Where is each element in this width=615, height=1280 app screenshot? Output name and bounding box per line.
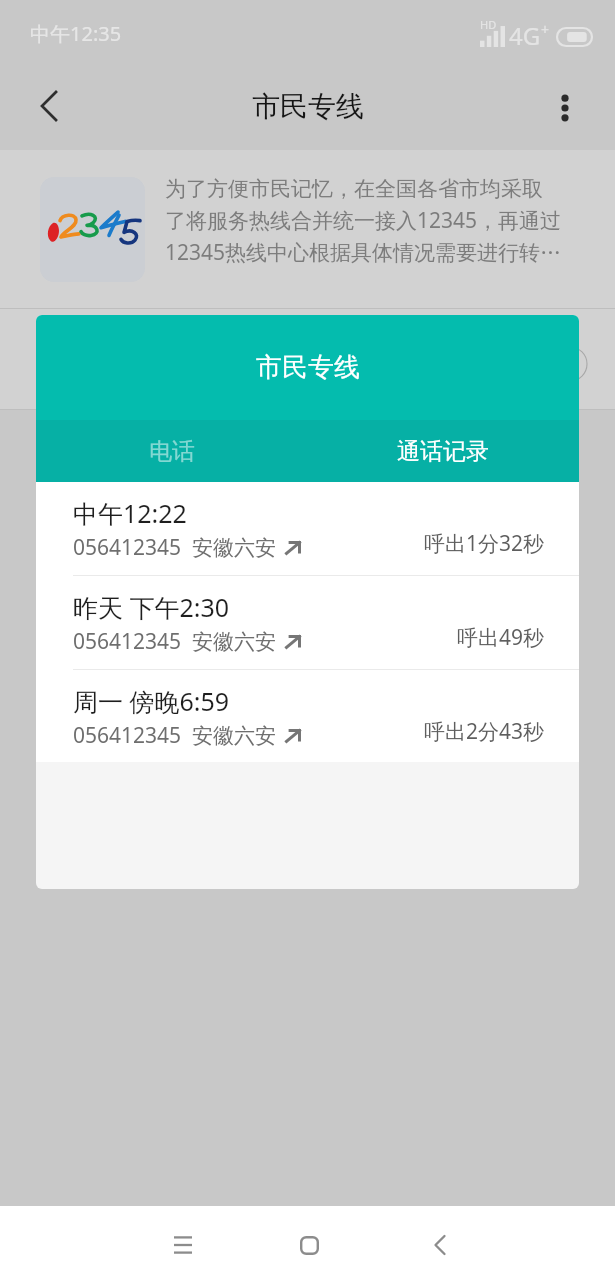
button[interactable]: Home bbox=[277, 1213, 341, 1277]
button[interactable]: 周一 傍晚6:59 bbox=[36, 670, 579, 762]
staticText: 电话 bbox=[149, 437, 195, 466]
staticText: 市民专线 bbox=[256, 351, 360, 384]
staticText: 昨天 下午2:30 bbox=[73, 590, 230, 624]
button[interactable]: Back bbox=[406, 1213, 470, 1277]
staticText: 为了方便市民记忆，在全国各省市均采取了将服务热线合并统一接入12345，再通过1… bbox=[165, 176, 563, 267]
staticText: 中午12:35 bbox=[30, 20, 122, 47]
button[interactable]: 电话 bbox=[36, 420, 307, 482]
staticText: 056412345 安徽六安 bbox=[73, 533, 277, 562]
button[interactable]: Back bbox=[24, 82, 72, 130]
staticText: 周一 傍晚6:59 bbox=[73, 684, 230, 718]
button[interactable]: 昨天 下午2:30 bbox=[36, 576, 579, 669]
button[interactable]: 中午12:22 bbox=[36, 482, 579, 575]
button[interactable]: Recents bbox=[151, 1213, 215, 1277]
staticText: 呼出49秒 bbox=[457, 623, 545, 652]
staticText: 通话记录 bbox=[397, 437, 489, 466]
staticText: 呼出1分32秒 bbox=[424, 529, 545, 558]
button[interactable]: More options bbox=[543, 84, 587, 128]
staticText: 4G bbox=[509, 19, 541, 52]
staticText: HD bbox=[480, 17, 497, 32]
staticText: 中午12:22 bbox=[73, 496, 187, 530]
staticText: + bbox=[541, 20, 550, 39]
staticText: 市民专线 bbox=[252, 89, 364, 124]
staticText: 056412345 安徽六安 bbox=[73, 627, 277, 656]
staticText: 056412345 安徽六安 bbox=[73, 721, 277, 750]
button[interactable]: 通话记录 bbox=[307, 420, 579, 482]
staticText: 呼出2分43秒 bbox=[424, 717, 545, 746]
